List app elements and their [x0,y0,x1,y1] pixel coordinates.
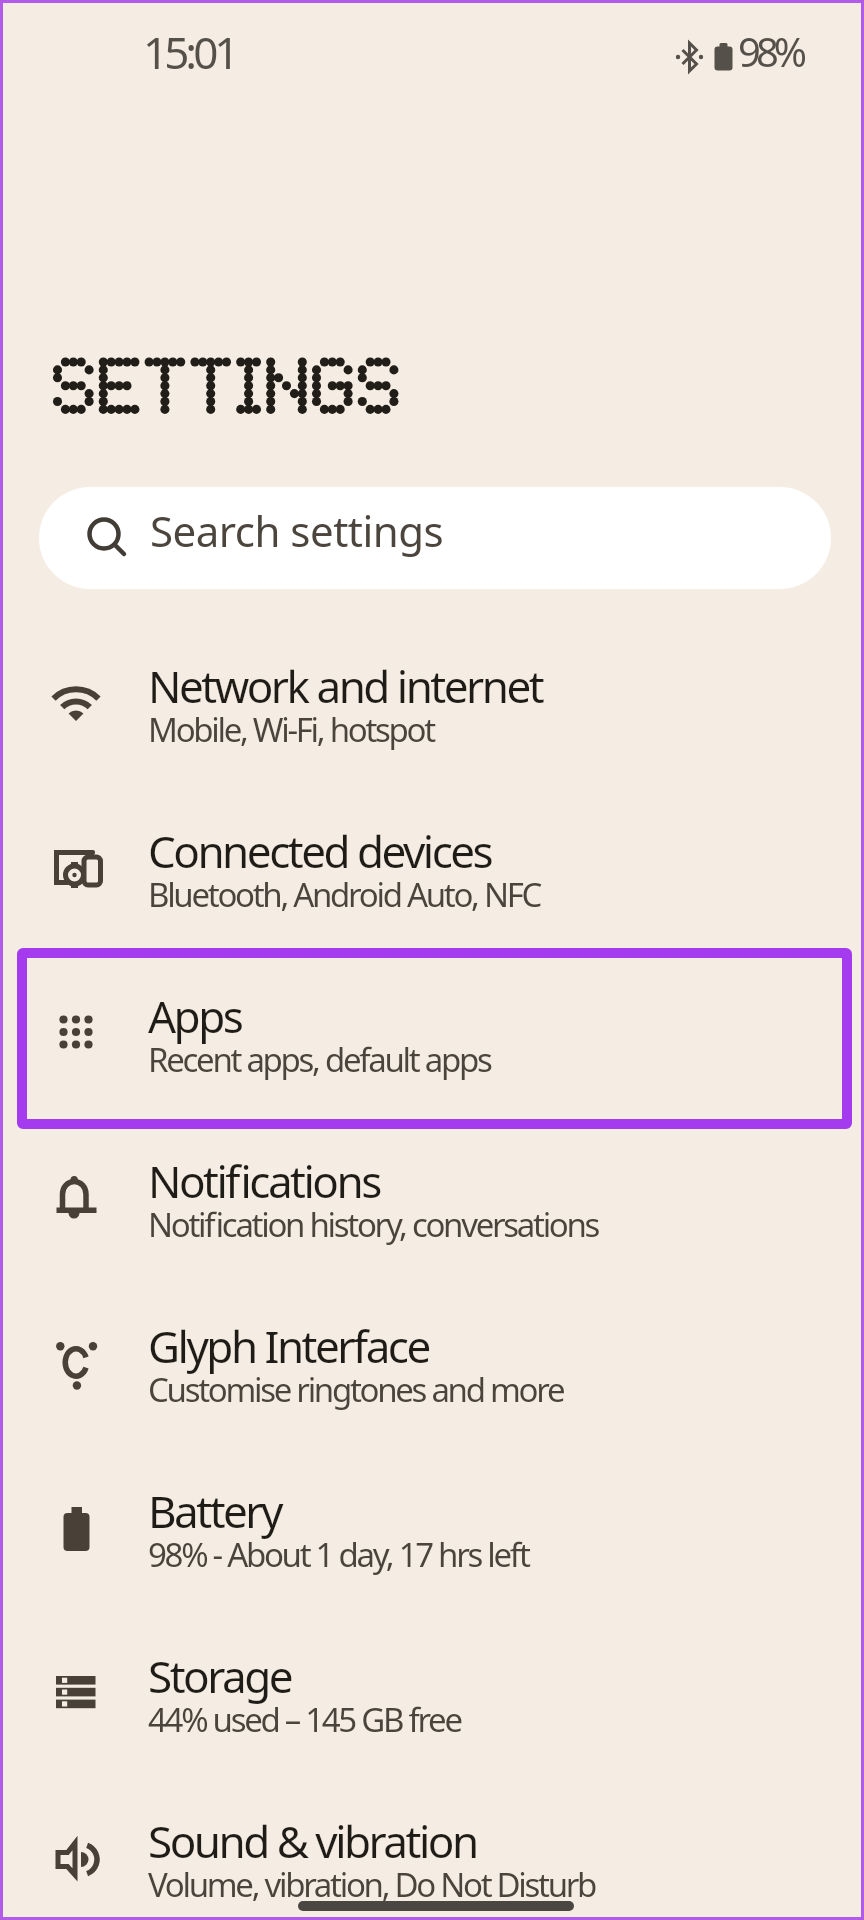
staticText: 15:01 [143,22,236,82]
staticText: 44% used – 145 GB free [148,1697,461,1742]
staticText: Search settings [150,502,444,559]
staticText: Network and internet [148,656,543,716]
button[interactable]: Apps [3,959,861,1124]
staticText: Customise ringtones and more [148,1367,564,1412]
button[interactable]: Battery [3,1454,861,1619]
staticText: Storage [148,1646,292,1706]
staticText: Battery [148,1481,281,1541]
button[interactable]: Glyph Interface [3,1289,861,1454]
staticText: 98% [738,24,802,78]
button[interactable]: Sound & vibration [3,1784,861,1920]
button[interactable]: Search settings [39,487,831,589]
button[interactable]: Notifications [3,1124,861,1289]
staticText: Mobile, Wi-Fi, hotspot [148,707,434,752]
staticText: Glyph Interface [148,1316,429,1376]
button[interactable]: Connected devices [3,794,861,959]
staticText: Bluetooth, Android Auto, NFC [148,872,541,917]
button[interactable]: Network and internet [3,629,861,794]
staticText: Connected devices [148,821,492,881]
staticText: Volume, vibration, Do Not Disturb [148,1862,596,1907]
staticText: Apps [148,986,242,1046]
staticText: Notifications [148,1151,380,1211]
button[interactable]: Storage [3,1619,861,1784]
staticText: Recent apps, default apps [148,1037,491,1082]
staticText: 98% - About 1 day, 17 hrs left [148,1532,529,1577]
staticText: Sound & vibration [148,1811,477,1871]
staticText: Notification history, conversations [148,1202,599,1247]
